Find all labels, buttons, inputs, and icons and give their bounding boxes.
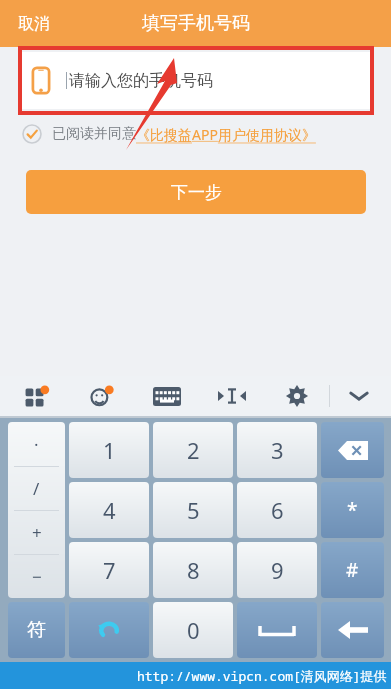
button[interactable]: ·	[8, 422, 65, 598]
button[interactable]: 下一步	[26, 170, 366, 214]
staticText: 下一步	[171, 182, 222, 203]
staticText: 8	[187, 555, 200, 585]
button[interactable]: 8	[153, 542, 233, 598]
button[interactable]: 2	[153, 422, 233, 478]
button[interactable]: Keyboard	[134, 376, 199, 416]
button[interactable]: Undo	[69, 602, 149, 658]
button[interactable]: 3	[237, 422, 317, 478]
staticText: 1	[103, 435, 116, 465]
button[interactable]: Cursor	[199, 376, 264, 416]
button[interactable]: 0	[153, 602, 233, 658]
staticText: −	[32, 565, 42, 588]
button[interactable]: 符	[8, 602, 65, 658]
button[interactable]: Hide keyboard	[330, 376, 388, 416]
button[interactable]: Enter	[321, 602, 384, 658]
staticText: 请输入您的手机号码	[69, 71, 213, 91]
staticText: http://www.vipcn.com[清风网络]提供	[137, 667, 387, 685]
button[interactable]: 取消	[6, 6, 62, 42]
staticText: 2	[187, 435, 200, 465]
staticText: /	[33, 477, 40, 500]
staticText: 6	[271, 495, 284, 525]
staticText: 取消	[18, 14, 50, 34]
button[interactable]: Settings	[264, 376, 329, 416]
staticText: 填写手机号码	[142, 12, 250, 35]
button[interactable]: 请输入您的手机号码	[22, 52, 370, 109]
button[interactable]: #	[321, 542, 384, 598]
button[interactable]: 已阅读并同意	[22, 120, 316, 148]
staticText: ·	[34, 433, 39, 456]
staticText: 《比搜益APP用户使用协议》	[136, 125, 316, 144]
staticText: 7	[103, 555, 116, 585]
staticText: *	[347, 497, 358, 523]
staticText: 9	[271, 555, 284, 585]
button[interactable]: Apps	[4, 376, 69, 416]
staticText: #	[346, 557, 359, 583]
staticText: 5	[187, 495, 200, 525]
button[interactable]: 5	[153, 482, 233, 538]
staticText: 0	[187, 615, 200, 645]
button[interactable]: Backspace	[321, 422, 384, 478]
button[interactable]: 6	[237, 482, 317, 538]
button[interactable]: Space	[237, 602, 317, 658]
staticText: 已阅读并同意	[52, 125, 136, 143]
staticText: +	[32, 521, 42, 544]
staticText: 4	[103, 495, 116, 525]
button[interactable]: *	[321, 482, 384, 538]
staticText: 符	[27, 618, 46, 642]
button[interactable]: 9	[237, 542, 317, 598]
button[interactable]: 1	[69, 422, 149, 478]
button[interactable]: Emoji	[69, 376, 134, 416]
staticText: 3	[271, 435, 284, 465]
button[interactable]: 7	[69, 542, 149, 598]
button[interactable]: 4	[69, 482, 149, 538]
